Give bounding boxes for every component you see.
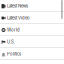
button[interactable]: Latest News [0, 0, 64, 12]
button[interactable]: World [0, 24, 64, 36]
staticText: World [7, 27, 20, 33]
button[interactable]: Latest Video [0, 12, 64, 24]
button[interactable]: Politics [0, 48, 64, 60]
button[interactable]: U.S. [0, 36, 64, 48]
staticText: Politics [7, 51, 21, 57]
staticText: U.S. [7, 39, 15, 45]
staticText: Latest News [7, 3, 28, 9]
staticText: Latest Video [7, 15, 30, 21]
